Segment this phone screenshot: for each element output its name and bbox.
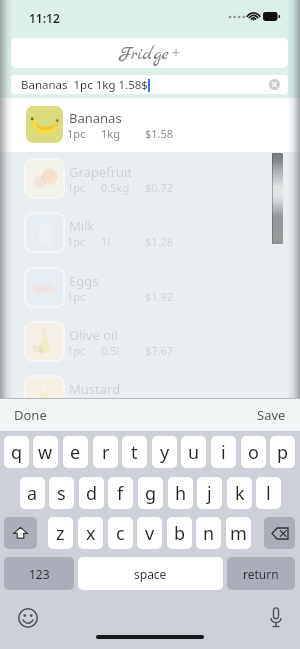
staticText: g — [145, 481, 157, 506]
staticText: Fridge — [118, 43, 169, 67]
staticText: 1pc — [67, 289, 86, 304]
button[interactable]: z — [48, 517, 73, 549]
staticText: Grapefruit — [69, 163, 133, 181]
staticText: Mustard — [69, 380, 121, 398]
staticText: 1pc — [67, 180, 86, 195]
staticText: t — [131, 440, 138, 465]
button[interactable]: Bananas — [0, 98, 300, 152]
button[interactable]: l — [256, 477, 281, 509]
staticText: s — [57, 481, 66, 506]
staticText: f — [117, 481, 124, 506]
staticText: e — [70, 440, 81, 465]
staticText: a — [27, 481, 38, 506]
button[interactable]: Milk — [0, 206, 300, 260]
staticText: 1pc — [67, 126, 86, 141]
staticText: $1.92 — [145, 289, 174, 304]
button[interactable]: Fridge — [11, 38, 288, 68]
staticText: $7.67 — [145, 343, 174, 358]
staticText: 0.5kg — [101, 180, 130, 195]
staticText: b — [174, 521, 186, 546]
staticText: y — [160, 440, 170, 465]
button[interactable]: u — [181, 436, 206, 468]
staticText: z — [56, 521, 65, 546]
staticText: d — [86, 481, 98, 506]
button[interactable]: m — [226, 517, 251, 549]
button[interactable]: c — [108, 517, 133, 549]
staticText: i — [221, 440, 226, 465]
staticText: m — [230, 521, 247, 546]
button[interactable]: t — [122, 436, 147, 468]
button[interactable]: v — [137, 517, 162, 549]
staticText: $1.58 — [145, 126, 174, 141]
button[interactable]: y — [152, 436, 177, 468]
staticText: Done — [14, 406, 47, 424]
staticText: $1.28 — [145, 234, 174, 249]
staticText: w — [38, 440, 53, 465]
button[interactable]: 123 — [4, 557, 74, 590]
button[interactable]: Backspace — [264, 517, 295, 549]
button[interactable]: Dictation — [269, 607, 283, 628]
button[interactable]: Shift — [4, 517, 37, 549]
staticText: 1pc — [67, 234, 86, 249]
button[interactable]: Mustard — [0, 369, 300, 423]
staticText: 11:12 — [29, 10, 60, 26]
staticText: n — [203, 521, 215, 546]
staticText: h — [175, 481, 187, 506]
button[interactable]: q — [4, 436, 29, 468]
button[interactable]: Olive oil — [0, 315, 300, 369]
staticText: 1kg — [101, 126, 120, 141]
staticText: 1pc — [67, 343, 86, 358]
staticText: v — [145, 521, 155, 546]
button[interactable]: Eggs — [0, 261, 300, 315]
staticText: $0.72 — [145, 180, 174, 195]
staticText: + — [172, 43, 181, 62]
staticText: Eggs — [69, 272, 99, 290]
staticText: 123 — [29, 566, 50, 582]
staticText: j — [207, 481, 212, 506]
button[interactable]: k — [227, 477, 252, 509]
button[interactable]: Clear text — [269, 79, 280, 90]
button[interactable]: w — [33, 436, 58, 468]
button[interactable]: f — [108, 477, 133, 509]
button[interactable]: Save — [257, 406, 286, 424]
staticText: 0.5l — [101, 343, 120, 358]
button[interactable]: n — [196, 517, 221, 549]
button[interactable]: g — [138, 477, 163, 509]
button[interactable]: a — [20, 477, 45, 509]
staticText: o — [248, 440, 259, 465]
staticText: Bananas 1pc 1kg 1.58$ — [21, 77, 148, 93]
staticText: k — [235, 481, 245, 506]
staticText: u — [188, 440, 200, 465]
button[interactable]: space — [78, 557, 223, 590]
staticText: Bananas — [69, 109, 122, 127]
staticText: Olive oil — [69, 326, 118, 344]
button[interactable]: return — [227, 557, 295, 590]
button[interactable]: Emoji keyboard — [18, 608, 38, 628]
button[interactable]: r — [93, 436, 118, 468]
staticText: l — [266, 481, 271, 506]
button[interactable]: o — [241, 436, 266, 468]
button[interactable]: p — [270, 436, 295, 468]
button[interactable]: Done — [14, 406, 47, 424]
staticText: return — [243, 566, 279, 582]
button[interactable]: Grapefruit — [0, 152, 300, 206]
staticText: p — [277, 440, 289, 465]
staticText: q — [11, 440, 23, 465]
button[interactable]: s — [49, 477, 74, 509]
staticText: 1l — [101, 234, 111, 249]
button[interactable]: e — [63, 436, 88, 468]
staticText: space — [134, 566, 167, 582]
staticText: r — [102, 440, 110, 465]
button[interactable]: b — [167, 517, 192, 549]
button[interactable]: i — [211, 436, 236, 468]
staticText: 1pc — [67, 397, 86, 412]
button[interactable]: j — [197, 477, 222, 509]
button[interactable]: Bananas 1pc 1kg 1.58$ — [11, 75, 288, 94]
button[interactable]: h — [168, 477, 193, 509]
staticText: x — [86, 521, 96, 546]
staticText: Milk — [69, 217, 95, 235]
button[interactable]: x — [78, 517, 103, 549]
staticText: c — [116, 521, 125, 546]
staticText: Save — [257, 406, 286, 424]
button[interactable]: d — [79, 477, 104, 509]
